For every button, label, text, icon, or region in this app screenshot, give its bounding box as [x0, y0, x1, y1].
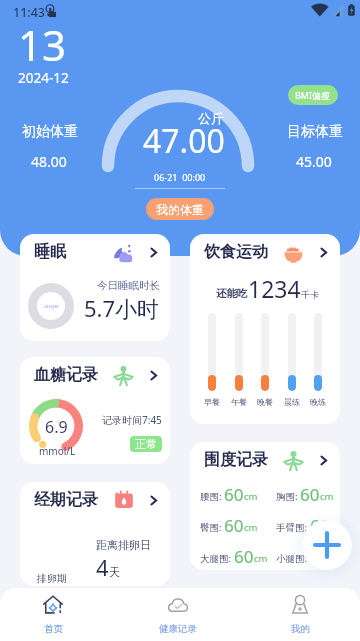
staticText: 45.00: [296, 152, 332, 171]
staticText: cm: [320, 490, 334, 503]
staticText: 记录时间7:45: [102, 413, 162, 427]
staticText: 5.7小时: [84, 293, 160, 323]
staticText: 距离排卵日: [96, 538, 151, 552]
button[interactable]: 经期记录: [20, 482, 170, 586]
staticText: 晚练: [310, 397, 326, 407]
button[interactable]: 我的: [260, 588, 340, 641]
staticText: cm: [244, 490, 258, 503]
staticText: mmol/L: [39, 444, 76, 458]
staticText: 13: [18, 16, 67, 73]
button[interactable]: 健康记录: [138, 588, 218, 641]
staticText: 血糖记录: [34, 365, 98, 385]
staticText: 经期记录: [34, 490, 98, 510]
staticText: 排卵期: [37, 572, 67, 585]
staticText: 早餐: [204, 397, 220, 407]
button[interactable]: 围度记录: [204, 449, 330, 471]
staticText: 48.00: [31, 152, 67, 171]
staticText: 腰围:: [200, 490, 222, 503]
staticText: cm: [244, 521, 258, 534]
staticText: 目标体重: [287, 123, 343, 141]
staticText: 今日睡眠时长: [97, 279, 160, 292]
staticText: 我的: [291, 623, 310, 635]
button[interactable]: 血糖记录: [34, 364, 160, 386]
staticText: 饮食运动: [204, 242, 268, 262]
staticText: 手臂围:: [276, 521, 308, 534]
staticText: 60: [310, 545, 330, 568]
staticText: 初始体重: [22, 123, 78, 141]
staticText: 胸围:: [276, 490, 298, 503]
button[interactable]: 血糖记录: [20, 357, 170, 464]
staticText: 343分钟: [44, 304, 59, 309]
staticText: 60: [224, 514, 244, 537]
staticText: 公斤: [198, 110, 224, 126]
staticText: 4: [96, 552, 109, 582]
staticText: 小腿围:: [276, 552, 308, 565]
staticText: 06-21 00:00: [154, 171, 206, 183]
staticText: 我的体重: [156, 202, 204, 217]
staticText: 天: [109, 565, 120, 579]
button[interactable]: Add record: [290, 508, 360, 582]
staticText: 大腿围:: [200, 552, 232, 565]
button[interactable]: 首页: [13, 588, 93, 641]
staticText: 11:43: [13, 4, 46, 21]
staticText: 正常: [135, 437, 157, 451]
button[interactable]: 睡眠: [20, 234, 170, 341]
staticText: 60: [300, 483, 320, 506]
staticText: 还能吃: [216, 287, 248, 300]
staticText: 首页: [44, 623, 63, 635]
staticText: 6.9: [45, 416, 68, 438]
staticText: 健康记录: [159, 623, 197, 635]
button[interactable]: 我的体重: [146, 198, 214, 220]
staticText: 臀围:: [200, 521, 222, 534]
button[interactable]: BMI偏瘦: [288, 85, 338, 105]
staticText: 晚餐: [257, 397, 273, 407]
staticText: cm: [254, 552, 268, 565]
staticText: 围度记录: [204, 450, 268, 470]
staticText: BMI偏瘦: [295, 89, 331, 101]
staticText: 晨练: [284, 397, 300, 407]
staticText: 47.00: [143, 119, 225, 163]
button[interactable]: 饮食运动: [190, 234, 340, 424]
button[interactable]: 睡眠: [34, 241, 160, 263]
button[interactable]: 围度记录: [190, 442, 340, 570]
staticText: 千卡: [301, 289, 319, 300]
staticText: 60: [234, 545, 254, 568]
staticText: 1234: [248, 273, 301, 304]
staticText: 午餐: [231, 397, 247, 407]
button[interactable]: 饮食运动: [204, 241, 330, 263]
staticText: 60: [310, 514, 330, 537]
staticText: 2024-12: [18, 69, 69, 87]
staticText: 睡眠: [34, 242, 66, 262]
staticText: 60: [224, 483, 244, 506]
button[interactable]: 经期记录: [34, 489, 160, 511]
